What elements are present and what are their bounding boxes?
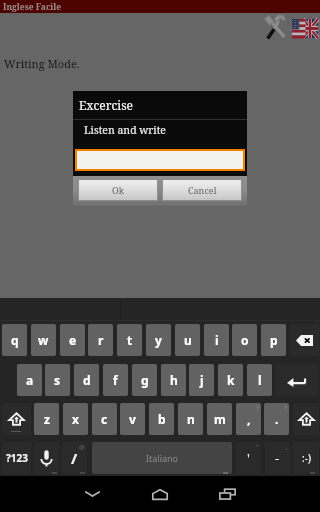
staticText: v xyxy=(129,411,136,427)
button[interactable]: u xyxy=(175,324,200,356)
button[interactable]: Cancel xyxy=(162,179,242,201)
staticText: l xyxy=(258,372,262,388)
button[interactable]: Shift xyxy=(2,403,31,435)
button[interactable]: Home xyxy=(144,476,176,512)
staticText: i xyxy=(215,332,219,348)
staticText: s xyxy=(54,372,61,388)
staticText: w xyxy=(38,332,49,348)
staticText: ?123 xyxy=(6,451,28,465)
staticText: :-) xyxy=(302,451,311,465)
staticText: Inglese Facile xyxy=(3,1,62,13)
button[interactable]: i xyxy=(204,324,229,356)
button[interactable]: e xyxy=(60,324,85,356)
button[interactable]: f xyxy=(103,364,128,396)
button[interactable]: c xyxy=(92,403,117,435)
staticText: r xyxy=(98,332,104,348)
button[interactable]: v xyxy=(120,403,145,435)
staticText: " xyxy=(256,443,259,451)
staticText: u xyxy=(184,332,192,348)
staticText: a xyxy=(26,372,34,388)
button[interactable]: Space xyxy=(92,442,232,474)
staticText: t xyxy=(127,332,133,348)
button[interactable]: w xyxy=(31,324,56,356)
staticText: - xyxy=(275,449,280,467)
button[interactable]: Apostrophe xyxy=(236,442,261,474)
button[interactable]: Tools xyxy=(262,14,288,40)
button[interactable]: h xyxy=(161,364,186,396)
button[interactable]: Language xyxy=(292,19,318,38)
staticText: k xyxy=(227,372,235,388)
button[interactable]: Enter xyxy=(275,364,318,396)
button[interactable]: Voice input xyxy=(34,442,59,474)
staticText: Ok xyxy=(112,184,124,196)
button[interactable]: z xyxy=(34,403,59,435)
staticText: e xyxy=(69,332,77,348)
staticText: c xyxy=(101,411,108,427)
staticText: z xyxy=(44,411,50,427)
staticText: @ xyxy=(79,443,85,451)
button[interactable]: l xyxy=(247,364,272,396)
staticText: h xyxy=(170,372,178,388)
staticText: n xyxy=(187,411,195,427)
button[interactable]: p xyxy=(261,324,286,356)
button[interactable]: n xyxy=(178,403,203,435)
button[interactable]: x xyxy=(63,403,88,435)
button[interactable]: g xyxy=(132,364,157,396)
staticText: p xyxy=(270,332,278,348)
staticText: b xyxy=(158,411,166,427)
button[interactable]: r xyxy=(88,324,113,356)
staticText: ! xyxy=(257,404,259,412)
button[interactable]: Hide keyboard xyxy=(76,476,108,512)
button[interactable]: d xyxy=(74,364,99,396)
button[interactable]: j xyxy=(189,364,214,396)
button[interactable]: m xyxy=(207,403,232,435)
button[interactable]: a xyxy=(17,364,42,396)
staticText: ? xyxy=(284,404,287,412)
button[interactable]: o xyxy=(232,324,257,356)
button[interactable]: Symbols xyxy=(2,442,31,474)
button[interactable]: k xyxy=(218,364,243,396)
staticText: Listen and write xyxy=(84,123,166,137)
button[interactable]: , xyxy=(236,403,261,435)
staticText: g xyxy=(141,372,149,388)
staticText: , xyxy=(247,411,251,427)
staticText: x xyxy=(72,411,79,427)
staticText: o xyxy=(241,332,249,348)
button[interactable]: t xyxy=(117,324,142,356)
staticText: ' xyxy=(247,449,250,467)
staticText: . xyxy=(275,411,279,427)
button[interactable]: b xyxy=(149,403,174,435)
button[interactable]: . xyxy=(264,403,289,435)
button[interactable]: q xyxy=(2,324,27,356)
staticText: Excercise xyxy=(79,97,133,113)
button[interactable]: Backspace xyxy=(290,324,319,356)
staticText: Writing Mode. xyxy=(4,56,80,71)
button[interactable]: y xyxy=(146,324,171,356)
staticText: q xyxy=(11,332,19,348)
staticText: Cancel xyxy=(188,184,217,196)
staticText: d xyxy=(83,372,91,388)
button[interactable]: Emoticons xyxy=(293,442,319,474)
button[interactable]: Slash xyxy=(62,442,87,474)
button[interactable]: Hyphen xyxy=(265,442,290,474)
button[interactable]: Recent apps xyxy=(211,476,243,512)
staticText: y xyxy=(155,332,162,348)
button[interactable]: Ok xyxy=(78,179,158,201)
staticText: / xyxy=(71,448,78,468)
staticText: j xyxy=(200,372,204,388)
staticText: Italiano xyxy=(146,452,179,464)
staticText: m xyxy=(214,411,226,427)
button[interactable]: Shift xyxy=(293,403,319,435)
staticText: _ xyxy=(285,443,288,451)
staticText: f xyxy=(113,372,118,388)
button[interactable]: s xyxy=(45,364,70,396)
